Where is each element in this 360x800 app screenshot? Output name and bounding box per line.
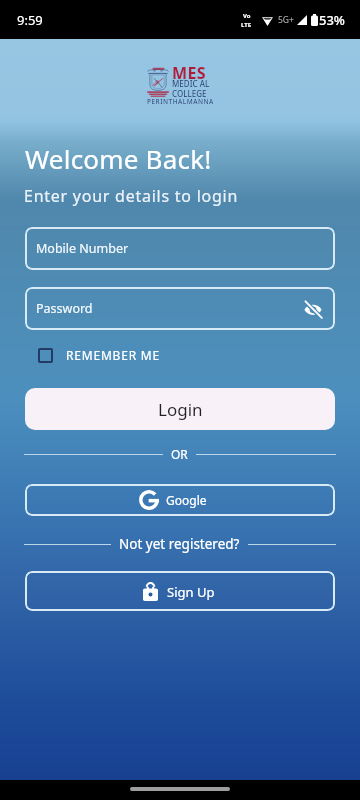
staticText: Vo (243, 12, 251, 20)
button[interactable]: Mobile Number (25, 227, 335, 270)
button[interactable]: Login (25, 388, 335, 430)
staticText: Login (158, 398, 203, 421)
staticText: Sign Up (167, 583, 215, 601)
staticText: Mobile Number (36, 240, 129, 257)
staticText: COLLEGE (172, 88, 207, 99)
staticText: MES (172, 62, 206, 84)
staticText: Not yet registered? (119, 535, 240, 553)
staticText: Google (166, 492, 207, 508)
staticText: MEDIC AL (172, 78, 210, 89)
staticText: Enter your details to login (24, 185, 239, 207)
button[interactable]: REMEMBER ME (25, 347, 160, 363)
staticText: 5G+ (278, 14, 294, 26)
staticText: OR (171, 446, 188, 462)
staticText: 9:59 (17, 11, 43, 29)
other: VoLTE (241, 12, 252, 29)
staticText: 53% (319, 11, 345, 29)
staticText: Password (36, 300, 93, 317)
button[interactable]: Toggle password visibility (302, 298, 324, 320)
button[interactable]: Google (25, 484, 335, 516)
button[interactable]: Password (25, 287, 335, 330)
staticText: LTE (241, 21, 252, 29)
staticText: REMEMBER ME (66, 347, 160, 363)
staticText: PERINTHALMANNA (147, 97, 214, 106)
staticText: Welcome Back! (25, 141, 212, 176)
button[interactable]: Sign Up (25, 571, 335, 611)
